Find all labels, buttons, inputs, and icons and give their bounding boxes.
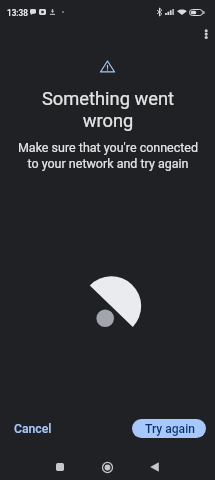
staticText: 13:38 bbox=[7, 8, 28, 18]
button[interactable]: Back bbox=[142, 455, 166, 479]
button[interactable]: Recent apps bbox=[48, 455, 72, 479]
button[interactable]: More options bbox=[193, 24, 213, 44]
staticText: Try again bbox=[145, 422, 195, 436]
button[interactable]: Home bbox=[95, 455, 119, 479]
staticText: Make sure that you're connected to your … bbox=[17, 140, 199, 171]
button[interactable]: Cancel bbox=[6, 419, 60, 439]
button[interactable]: Try again bbox=[132, 419, 206, 438]
staticText: Cancel bbox=[14, 422, 52, 436]
staticText: Something went wrong bbox=[28, 88, 188, 132]
